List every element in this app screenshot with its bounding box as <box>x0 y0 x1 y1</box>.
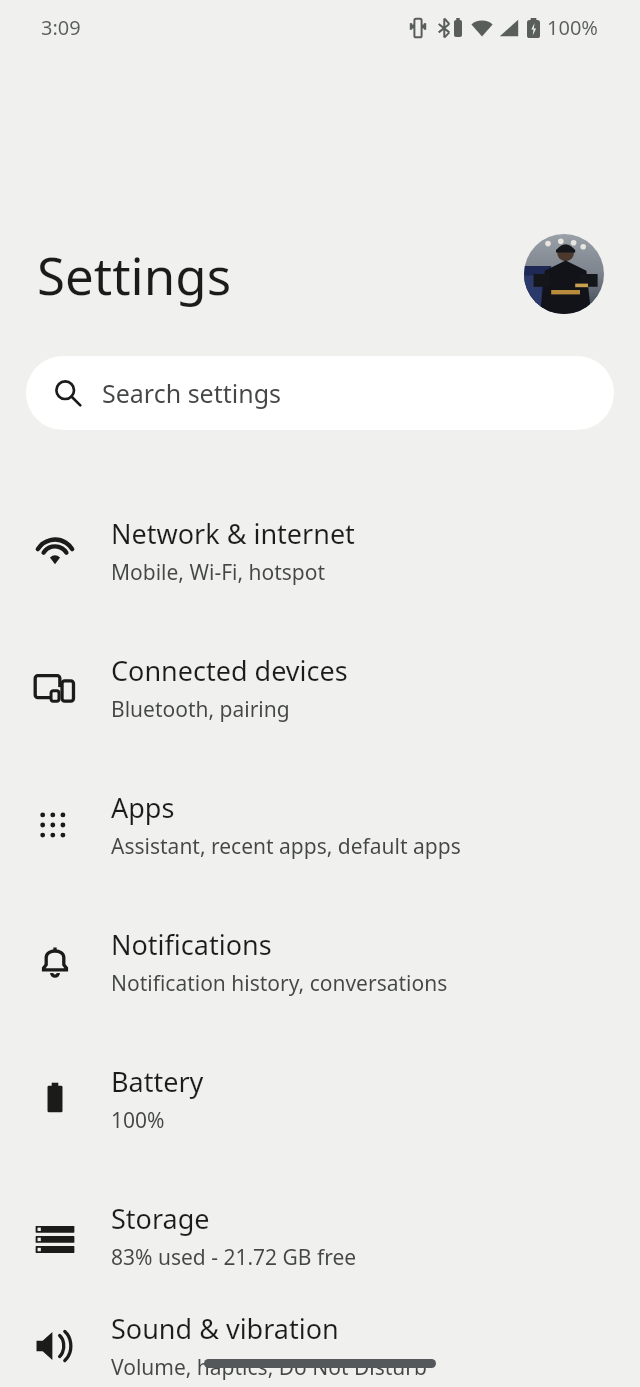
staticText: Storage <box>111 1200 210 1237</box>
staticText: Sound & vibration <box>111 1310 339 1347</box>
button[interactable]: Network & internet <box>0 482 640 619</box>
button[interactable]: Battery <box>0 1030 640 1167</box>
button[interactable]: Notifications <box>0 893 640 1030</box>
staticText: Volume, haptics, Do Not Disturb <box>111 1353 427 1382</box>
staticText: 100% <box>547 14 598 41</box>
button[interactable]: Apps <box>0 756 640 893</box>
staticText: 100% <box>111 1106 165 1135</box>
staticText: Search settings <box>102 376 282 410</box>
button[interactable]: Account profile <box>524 234 604 314</box>
staticText: Notification history, conversations <box>111 969 448 998</box>
staticText: Mobile, Wi-Fi, hotspot <box>111 558 326 587</box>
staticText: Network & internet <box>111 515 355 552</box>
staticText: Assistant, recent apps, default apps <box>111 832 461 861</box>
staticText: Settings <box>37 240 232 309</box>
staticText: Bluetooth, pairing <box>111 695 290 724</box>
staticText: Connected devices <box>111 652 348 689</box>
button[interactable]: Search settings <box>26 356 614 430</box>
staticText: Apps <box>111 789 175 826</box>
button[interactable]: Sound & vibration <box>0 1304 640 1387</box>
button[interactable]: Connected devices <box>0 619 640 756</box>
staticText: Battery <box>111 1063 204 1100</box>
staticText: 3:09 <box>41 14 81 41</box>
staticText: 83% used - 21.72 GB free <box>111 1243 357 1272</box>
button[interactable]: Storage <box>0 1167 640 1304</box>
staticText: Notifications <box>111 926 272 963</box>
